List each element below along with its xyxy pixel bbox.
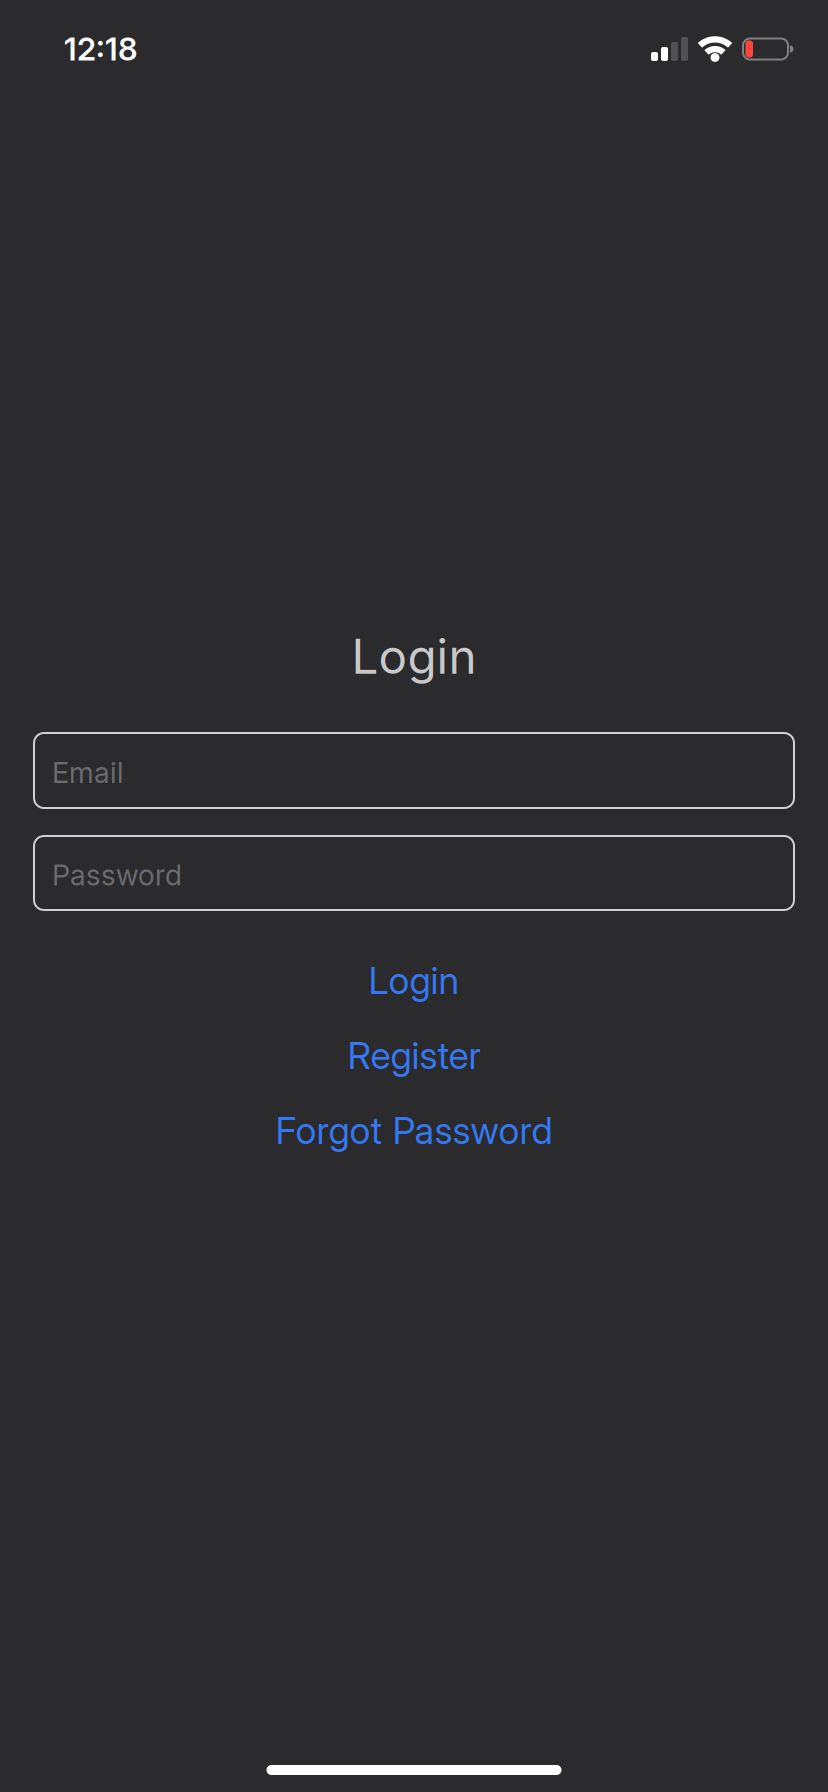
button[interactable]: Login xyxy=(368,943,459,1018)
button[interactable]: Register xyxy=(347,1018,480,1093)
staticText: Email xyxy=(52,755,124,790)
staticText: 12:18 xyxy=(64,30,138,68)
staticText: Password xyxy=(52,858,182,892)
staticText: Login xyxy=(368,958,459,1003)
staticText: Login xyxy=(351,628,476,685)
button[interactable]: Forgot Password xyxy=(275,1093,552,1168)
staticText: Forgot Password xyxy=(275,1108,552,1153)
secureTextField[interactable]: Password xyxy=(33,835,795,911)
staticText: Register xyxy=(347,1033,480,1078)
textField[interactable]: Email xyxy=(33,732,795,809)
